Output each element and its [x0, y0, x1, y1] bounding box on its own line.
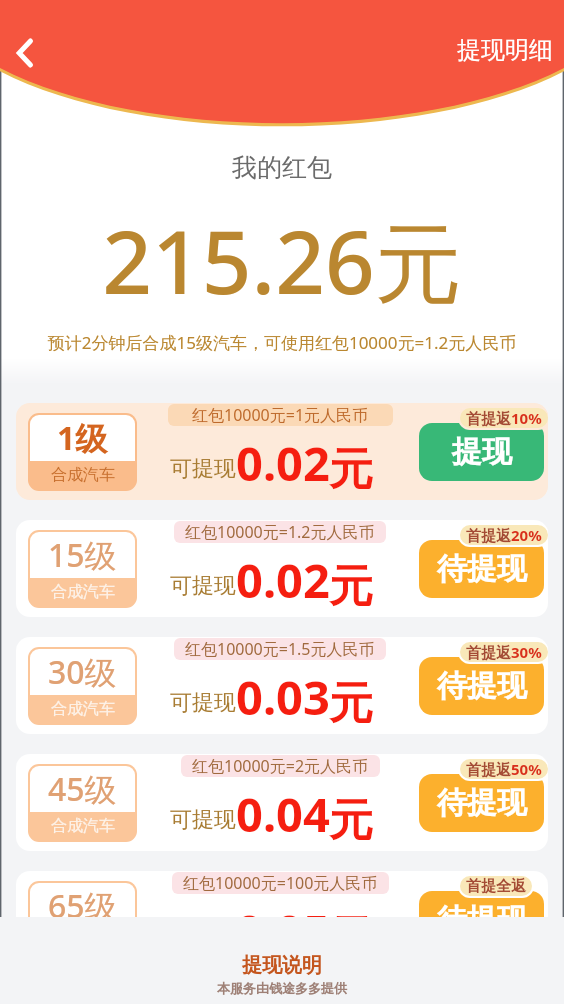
staticText: 元 — [329, 910, 373, 965]
staticText: 红包10000元=1.2元人民币 — [185, 521, 375, 543]
staticText: 红包10000元=1.5元人民币 — [185, 638, 375, 660]
staticText: 1级 — [57, 416, 108, 460]
staticText: 首提返30% — [466, 642, 542, 662]
button[interactable]: 待提现 — [419, 540, 544, 598]
staticText: 首提返20% — [466, 525, 542, 545]
staticText: 45级 — [48, 767, 117, 811]
staticText: 我的红包 — [0, 152, 564, 183]
staticText: 可提现 — [170, 689, 236, 717]
staticText: 本服务由钱途多多提供 — [0, 980, 564, 996]
staticText: 待提现 — [437, 784, 527, 822]
staticText: 待提现 — [437, 667, 527, 705]
staticText: 30级 — [48, 650, 117, 694]
staticText: 红包10000元=100元人民币 — [183, 872, 378, 894]
button[interactable]: 提现明细 — [457, 35, 553, 65]
button[interactable]: 待提现 — [419, 657, 544, 715]
button[interactable]: Back — [2, 29, 48, 75]
button[interactable]: 45级 — [16, 754, 548, 851]
staticText: 可提现 — [170, 806, 236, 834]
button[interactable]: 1级 — [16, 403, 548, 500]
staticText: 0.05 — [236, 899, 330, 963]
staticText: 元 — [329, 559, 373, 614]
staticText: 可提现 — [170, 572, 236, 600]
button[interactable]: 待提现 — [419, 891, 544, 949]
staticText: 元 — [329, 676, 373, 731]
button[interactable]: 15级 — [16, 520, 548, 617]
staticText: 预计2分钟后合成15级汽车，可使用红包10000元=1.2元人民币 — [0, 331, 564, 354]
button[interactable]: 待提现 — [419, 774, 544, 832]
button[interactable]: 提现 — [419, 423, 544, 481]
staticText: 元 — [329, 793, 373, 848]
staticText: 首提返10% — [466, 408, 542, 428]
staticText: 0.02 — [236, 548, 330, 612]
staticText: 合成汽车 — [51, 465, 115, 485]
staticText: 0.04 — [236, 782, 330, 846]
staticText: 可提现 — [170, 455, 236, 483]
button[interactable]: 提现说明 — [0, 953, 564, 978]
staticText: 元 — [329, 442, 373, 497]
button[interactable]: 30级 — [16, 637, 548, 734]
staticText: 0.03 — [236, 665, 330, 729]
staticText: 合成汽车 — [51, 816, 115, 836]
staticText: 红包10000元=2元人民币 — [192, 755, 369, 777]
staticText: 待提现 — [437, 901, 527, 939]
staticText: 红包10000元=1元人民币 — [192, 404, 369, 426]
staticText: 0.02 — [236, 431, 330, 495]
staticText: 首提返50% — [466, 759, 542, 779]
staticText: 首提全返 — [466, 877, 526, 896]
staticText: 合成汽车 — [51, 699, 115, 719]
staticText: 65级 — [48, 884, 117, 928]
button[interactable]: 65级 — [16, 871, 548, 968]
staticText: 215.26元 — [0, 201, 564, 320]
staticText: 待提现 — [437, 550, 527, 588]
staticText: 提现 — [452, 433, 512, 471]
staticText: 合成汽车 — [51, 582, 115, 602]
staticText: 15级 — [48, 533, 117, 577]
